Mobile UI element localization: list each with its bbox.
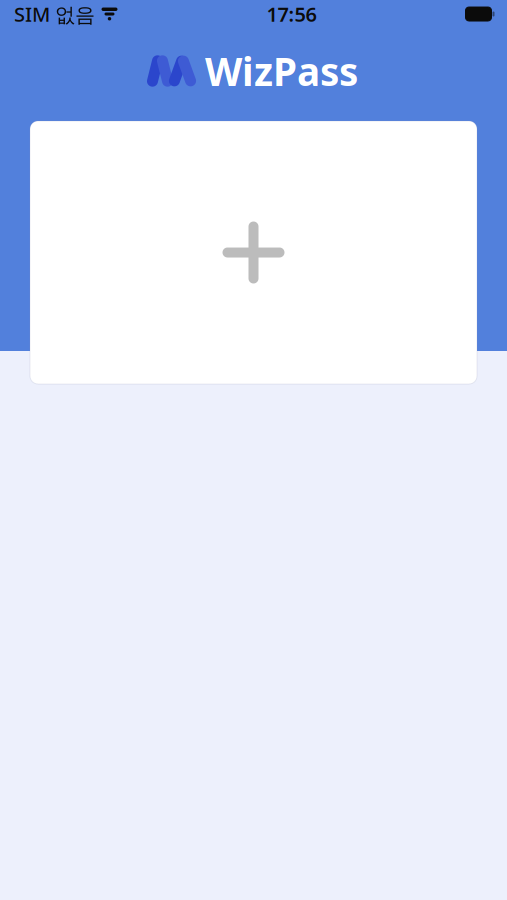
staticText: WizPass	[205, 45, 358, 97]
button[interactable]: Add pass	[30, 121, 477, 384]
staticText: 17:56	[266, 1, 316, 27]
staticText: SIM 없음	[14, 1, 95, 27]
